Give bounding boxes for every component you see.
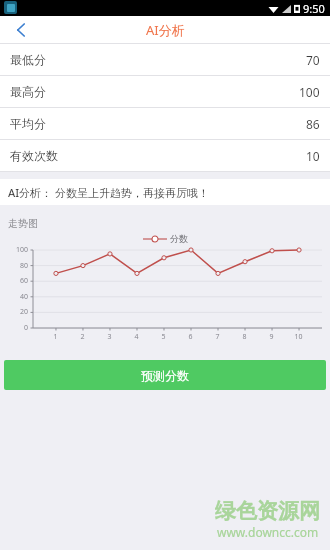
staticText: 最低分: [10, 52, 46, 67]
button[interactable]: 最高分: [0, 76, 330, 107]
staticText: 最高分: [10, 84, 46, 99]
button[interactable]: AI分析： 分数呈上升趋势，再接再厉哦！: [0, 179, 330, 205]
staticText: 绿色资源网: [215, 498, 320, 524]
button[interactable]: 有效次数: [0, 140, 330, 171]
button[interactable]: Back: [0, 16, 42, 44]
staticText: www.downcc.com: [217, 524, 319, 540]
staticText: 9:50: [303, 1, 325, 16]
staticText: 分数: [170, 233, 188, 244]
staticText: 86: [306, 116, 320, 132]
staticText: AI分析: [146, 21, 185, 39]
staticText: AI分析： 分数呈上升趋势，再接再厉哦！: [8, 185, 209, 200]
staticText: 预测分数: [141, 368, 189, 383]
staticText: 平均分: [10, 116, 46, 131]
button[interactable]: 预测分数: [4, 360, 326, 390]
staticText: 100: [299, 84, 320, 100]
staticText: 10: [306, 148, 320, 164]
button[interactable]: 最低分: [0, 44, 330, 75]
staticText: 走势图: [8, 217, 38, 230]
staticText: 70: [306, 52, 320, 68]
staticText: 有效次数: [10, 148, 58, 163]
button[interactable]: 平均分: [0, 108, 330, 139]
